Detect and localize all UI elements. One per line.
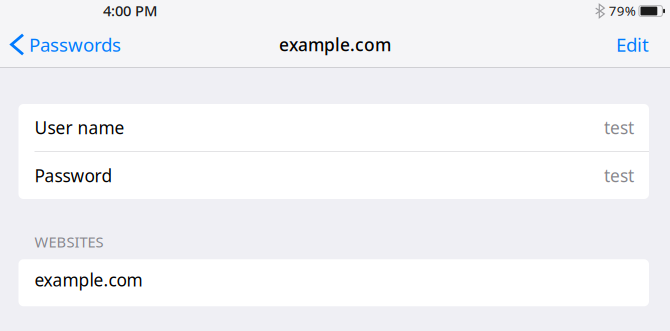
staticText: Password [34, 164, 112, 187]
staticText: User name [34, 116, 124, 139]
staticText: Passwords [29, 32, 121, 57]
button[interactable]: Edit [602, 22, 670, 67]
staticText: example.com [279, 33, 391, 56]
staticText: WEBSITES [34, 232, 103, 251]
staticText: test [604, 116, 634, 139]
button[interactable]: Password [18, 152, 649, 199]
button[interactable]: User name [18, 104, 649, 151]
staticText: 79% [609, 2, 636, 19]
staticText: test [604, 164, 634, 187]
staticText: 4:00 PM [103, 1, 157, 20]
button[interactable]: Passwords [0, 22, 131, 67]
staticText: Edit [616, 32, 649, 57]
staticText: example.com [34, 268, 142, 291]
button[interactable]: example.com [18, 259, 649, 306]
